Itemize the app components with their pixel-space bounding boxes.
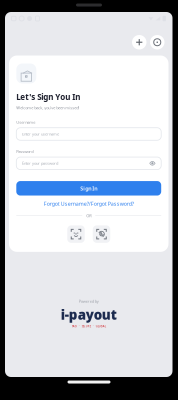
staticText: Powered by: [79, 298, 99, 304]
staticText: Sign In: [80, 185, 97, 192]
staticText: Username: [16, 119, 35, 125]
staticText: Forgot Username?/Forgot Password?: [44, 200, 134, 207]
button[interactable]: Add: [132, 35, 146, 49]
button[interactable]: Forgot Username?/Forgot Password?: [16, 201, 161, 207]
staticText: Password: [16, 149, 33, 154]
staticText: FAST · SECURE · GLOBAL: [72, 324, 106, 328]
staticText: Enter your password: [22, 161, 58, 166]
staticText: OR: [86, 213, 91, 218]
staticText: Let's Sign You In: [16, 91, 80, 102]
button[interactable]: Settings: [150, 35, 164, 49]
button[interactable]: Sign in with Face ID: [67, 225, 85, 243]
staticText: Enter your username: [22, 131, 59, 137]
staticText: Welcome back, you've been missed!: [16, 105, 79, 110]
button[interactable]: Sign in with Touch ID: [93, 225, 110, 243]
staticText: e: [25, 72, 28, 79]
button[interactable]: Sign In: [16, 181, 161, 196]
staticText: i-payout: [61, 306, 117, 323]
